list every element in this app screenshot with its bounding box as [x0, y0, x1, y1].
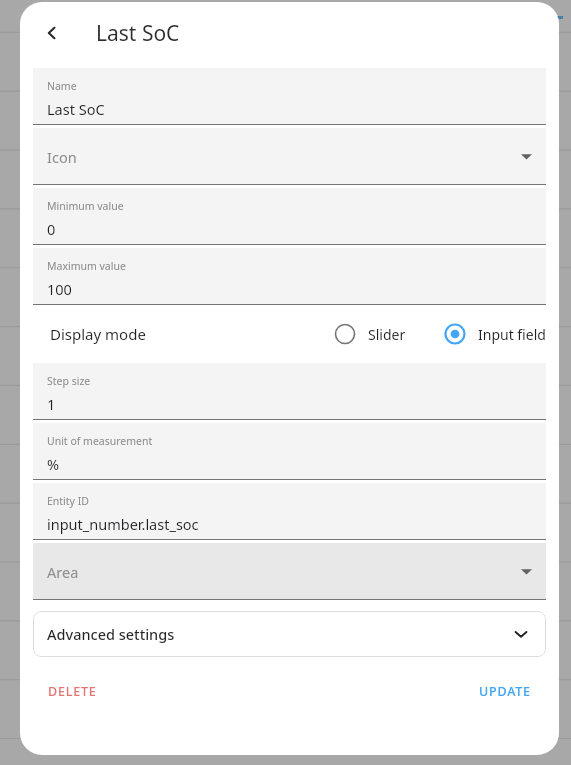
staticText: Input field	[478, 325, 546, 344]
button[interactable]: Maximum value	[33, 248, 546, 305]
staticText: Last SoC	[47, 99, 105, 119]
button[interactable]: Minimum value	[33, 188, 546, 245]
staticText: Name	[47, 79, 77, 93]
staticText: Display mode	[50, 324, 146, 344]
button[interactable]: Slider	[334, 323, 406, 345]
button[interactable]: Step size	[33, 363, 546, 420]
button[interactable]: Name	[33, 68, 546, 125]
button[interactable]: Entity ID	[33, 483, 546, 540]
staticText: Slider	[368, 325, 406, 344]
staticText: Area	[47, 562, 79, 582]
staticText: UPDATE	[479, 683, 531, 700]
staticText: Advanced settings	[47, 624, 175, 644]
staticText: Last SoC	[96, 19, 180, 48]
staticText: %	[47, 454, 60, 474]
staticText: 0	[47, 219, 56, 239]
button[interactable]: Icon	[33, 128, 546, 185]
staticText: input_number.last_soc	[47, 514, 199, 534]
button[interactable]: UPDATE	[471, 677, 539, 706]
staticText: 100	[47, 279, 72, 299]
staticText: Minimum value	[47, 199, 124, 213]
staticText: Entity ID	[47, 494, 89, 508]
staticText: 1	[47, 394, 56, 414]
button[interactable]: Area	[33, 543, 546, 600]
staticText: Unit of measurement	[47, 434, 153, 448]
staticText: Icon	[47, 147, 77, 167]
button[interactable]: Input field	[444, 323, 546, 345]
button[interactable]: Back	[30, 11, 74, 55]
staticText: Maximum value	[47, 259, 126, 273]
staticText: Step size	[47, 374, 91, 388]
button[interactable]: Unit of measurement	[33, 423, 546, 480]
button[interactable]: DELETE	[40, 677, 105, 706]
staticText: DELETE	[48, 683, 97, 700]
button[interactable]: Advanced settings	[33, 611, 546, 657]
